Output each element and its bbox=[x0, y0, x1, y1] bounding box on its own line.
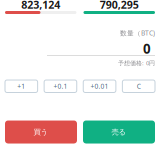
staticText: 0 bbox=[143, 39, 151, 58]
staticText: C bbox=[137, 82, 141, 91]
staticText: 予想価格: 0円 bbox=[118, 59, 155, 67]
button[interactable]: +1 bbox=[5, 80, 38, 92]
staticText: 823,124 bbox=[21, 0, 60, 12]
button[interactable]: C bbox=[122, 80, 155, 92]
staticText: 790,295 bbox=[100, 0, 139, 12]
staticText: +0.01 bbox=[91, 82, 109, 91]
staticText: 売る bbox=[111, 127, 126, 137]
button[interactable]: 売る bbox=[83, 120, 155, 143]
button[interactable]: 買う bbox=[5, 120, 77, 143]
staticText: 数量（BTC) bbox=[120, 28, 155, 38]
staticText: +0.1 bbox=[53, 82, 67, 91]
button[interactable]: +0.01 bbox=[83, 80, 116, 92]
staticText: 買う bbox=[33, 127, 48, 137]
staticText: +1 bbox=[17, 82, 25, 91]
button[interactable]: +0.1 bbox=[44, 80, 77, 92]
